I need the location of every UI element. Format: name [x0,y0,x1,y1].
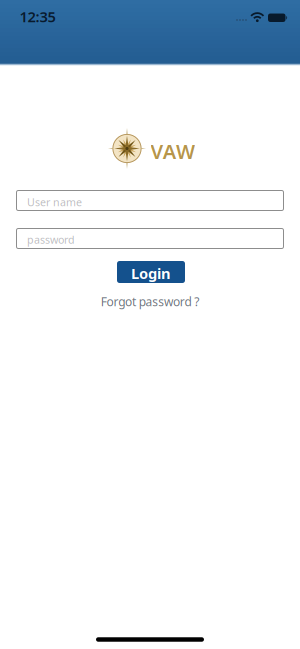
staticText: 12:35 [19,7,55,26]
staticText: VAW [150,138,195,165]
button[interactable]: Forgot password ? [101,293,199,309]
button[interactable]: User name [16,190,284,211]
staticText: password [27,233,75,247]
staticText: Forgot password ? [101,293,199,309]
button[interactable]: Login [117,261,185,283]
staticText: User name [27,195,82,209]
button[interactable]: password [16,228,284,249]
staticText: Login [131,263,171,283]
